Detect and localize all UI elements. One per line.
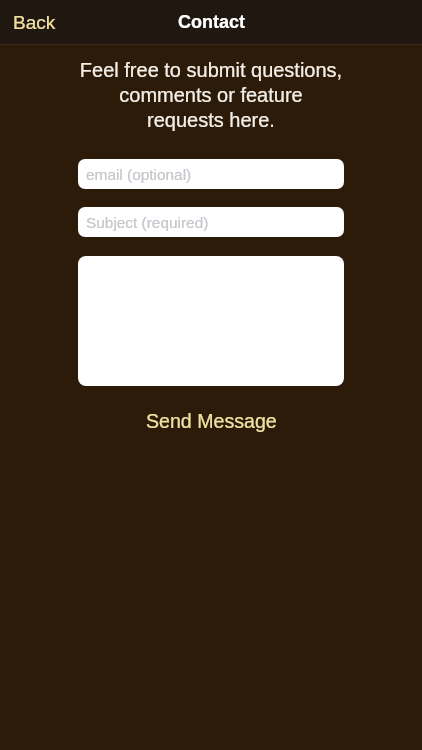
button[interactable]: Subject (required)	[78, 207, 344, 237]
staticText: Contact	[178, 12, 245, 32]
staticText: Feel free to submit questions, comments …	[0, 59, 422, 131]
button[interactable]: Back	[0, 3, 66, 42]
staticText: email (optional)	[86, 166, 192, 183]
button[interactable]: Send Message	[120, 404, 303, 438]
staticText: Back	[13, 12, 56, 33]
staticText: Subject (required)	[86, 214, 209, 231]
staticText: Send Message	[146, 410, 277, 432]
button[interactable]: Message body	[78, 256, 344, 386]
button[interactable]: email (optional)	[78, 159, 344, 189]
